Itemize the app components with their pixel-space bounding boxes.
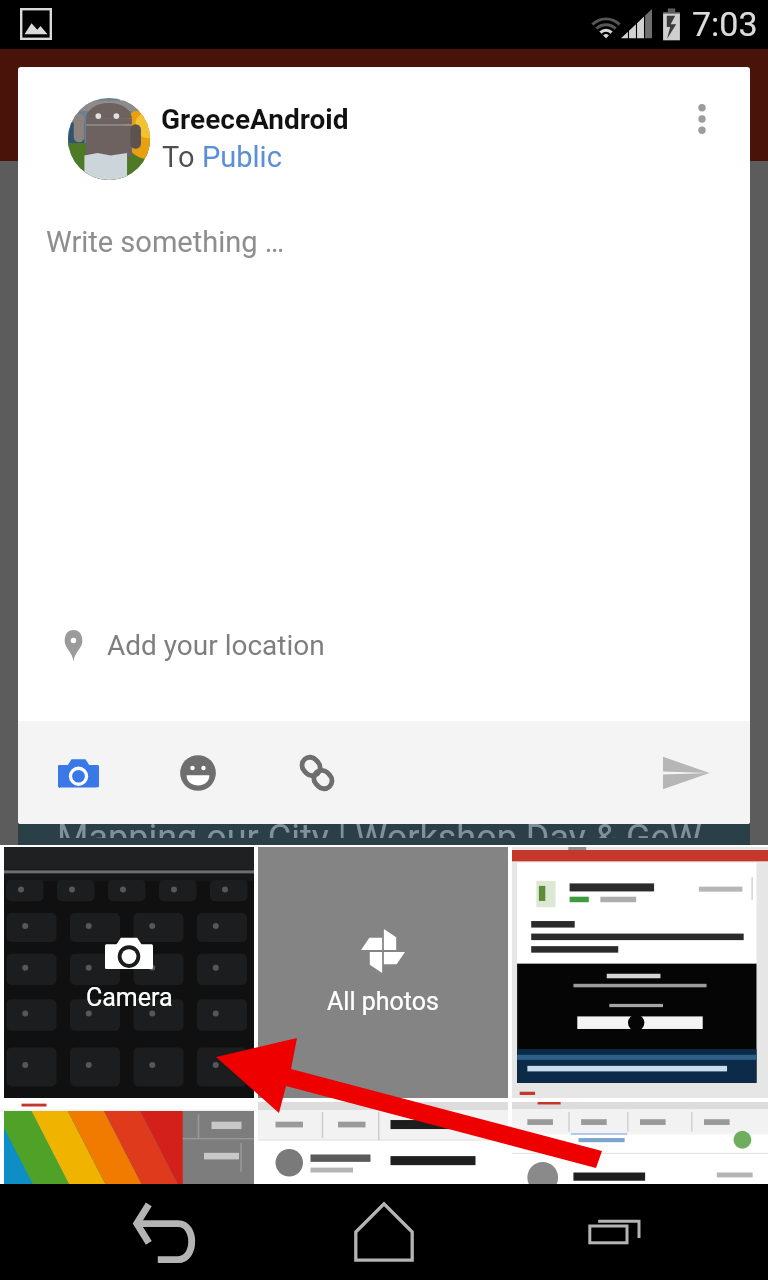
button[interactable]: Recent apps <box>560 1184 670 1280</box>
button[interactable]: More options <box>666 83 738 155</box>
staticText: Public <box>202 140 282 174</box>
staticText: Write something … <box>46 225 285 259</box>
button[interactable]: Insert emoji <box>162 737 234 809</box>
button[interactable]: Add your location <box>18 607 750 685</box>
staticText: All photos <box>327 987 439 1016</box>
button[interactable]: Send post <box>644 731 728 815</box>
staticText: Add your location <box>107 629 325 662</box>
button[interactable]: Home <box>329 1184 439 1280</box>
button[interactable]: Photo <box>512 847 768 1098</box>
staticText: Camera <box>86 983 173 1012</box>
button[interactable]: Profile photo <box>68 98 150 180</box>
button[interactable]: Back <box>110 1184 220 1280</box>
button[interactable]: Attach link <box>281 737 353 809</box>
button[interactable]: Take photo with camera <box>4 847 254 1098</box>
staticText: Mapping our City | Workshop Day & GeW <box>57 824 702 838</box>
staticText: 7:03 <box>692 4 758 44</box>
staticText: To <box>162 140 202 174</box>
button[interactable]: Photo <box>512 1102 768 1184</box>
button[interactable]: Camera <box>42 737 114 809</box>
button[interactable]: Photo <box>258 1102 508 1184</box>
staticText: GreeceAndroid <box>161 103 349 136</box>
button[interactable]: Photo <box>4 1102 254 1184</box>
button[interactable]: All photos <box>258 847 508 1098</box>
button[interactable]: Write something … <box>18 175 750 721</box>
